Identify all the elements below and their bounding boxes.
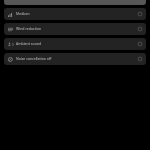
button[interactable]: More options bbox=[136, 25, 144, 33]
staticText: Noise cancellation off bbox=[16, 56, 136, 61]
button[interactable]: More options bbox=[136, 40, 144, 48]
button[interactable]: Ambient sound bbox=[4, 38, 146, 50]
staticText: Medium bbox=[16, 11, 136, 16]
button[interactable]: Wind reduction bbox=[4, 23, 146, 35]
staticText: Ambient sound bbox=[16, 41, 136, 46]
button[interactable]: More options bbox=[136, 10, 144, 18]
button[interactable]: Noise cancellation off bbox=[4, 53, 146, 65]
button[interactable]: Selected mode bbox=[4, 0, 146, 5]
button[interactable]: Medium bbox=[4, 8, 146, 20]
staticText: Wind reduction bbox=[16, 26, 136, 31]
button[interactable]: More options bbox=[136, 55, 144, 63]
